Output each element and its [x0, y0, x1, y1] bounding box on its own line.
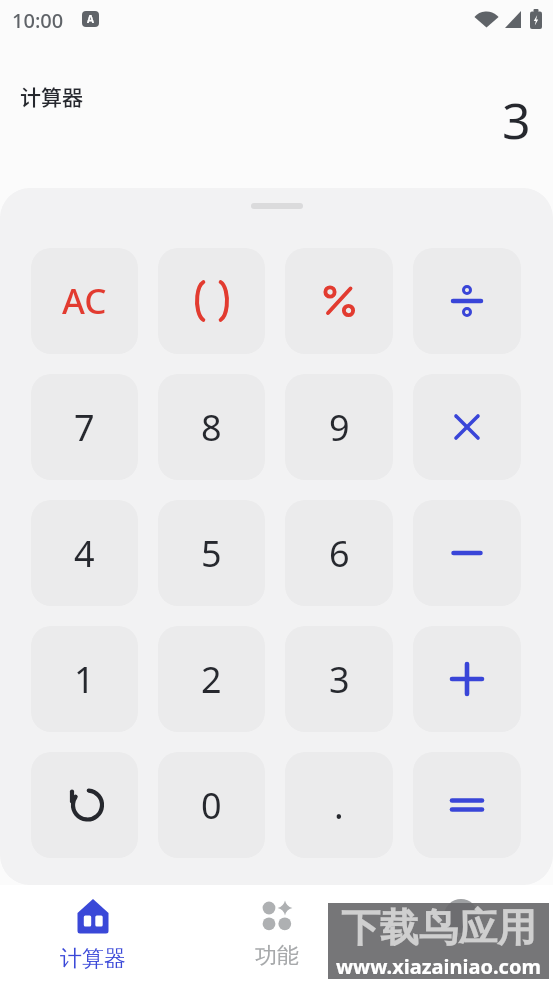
button[interactable]: 4: [31, 500, 138, 606]
button[interactable]: 6: [285, 500, 393, 606]
button[interactable]: [31, 752, 138, 858]
staticText: 7: [74, 403, 95, 452]
button[interactable]: [413, 752, 521, 858]
staticText: 计算器: [60, 945, 126, 973]
button[interactable]: 7: [31, 374, 138, 480]
button[interactable]: [413, 626, 521, 732]
staticText: 10:00: [12, 7, 64, 34]
staticText: 1: [74, 655, 95, 704]
button[interactable]: 9: [285, 374, 393, 480]
staticText: 4: [74, 529, 95, 578]
button[interactable]: [158, 248, 265, 354]
button[interactable]: 功能: [185, 885, 369, 984]
button[interactable]: 1: [31, 626, 138, 732]
staticText: 5: [201, 529, 222, 578]
button[interactable]: 5: [158, 500, 265, 606]
staticText: 功能: [255, 942, 299, 970]
button[interactable]: 2: [158, 626, 265, 732]
staticText: 计算器: [20, 81, 83, 111]
button[interactable]: 3: [285, 626, 393, 732]
staticText: 3: [502, 86, 531, 154]
button[interactable]: [413, 374, 521, 480]
button[interactable]: [413, 248, 521, 354]
button[interactable]: 计算器: [0, 885, 185, 984]
staticText: AC: [62, 277, 107, 325]
button[interactable]: [369, 885, 553, 984]
staticText: 9: [329, 403, 350, 452]
button[interactable]: 8: [158, 374, 265, 480]
button[interactable]: .: [285, 752, 393, 858]
staticText: .: [334, 781, 344, 830]
button[interactable]: AC: [31, 248, 138, 354]
staticText: 下载鸟应用: [341, 903, 536, 952]
button[interactable]: [285, 248, 393, 354]
button[interactable]: [413, 500, 521, 606]
staticText: 6: [329, 529, 350, 578]
staticText: 2: [201, 655, 222, 704]
staticText: A: [87, 12, 94, 26]
staticText: www.xiazainiao.com: [336, 953, 541, 979]
staticText: 8: [201, 403, 222, 452]
button[interactable]: 0: [158, 752, 265, 858]
staticText: 3: [329, 655, 350, 704]
staticText: 0: [201, 781, 222, 830]
